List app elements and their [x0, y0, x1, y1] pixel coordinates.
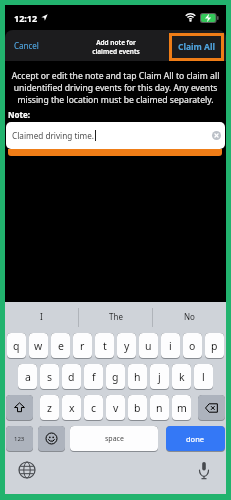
- button[interactable]: Cancel: [14, 40, 39, 51]
- staticText: o: [189, 339, 196, 353]
- staticText: d: [68, 370, 75, 384]
- staticText: 12:12: [14, 12, 38, 24]
- button[interactable]: q: [7, 333, 26, 358]
- staticText: h: [134, 370, 141, 384]
- button[interactable]: Claim All: [169, 33, 224, 61]
- button[interactable]: r: [73, 333, 92, 358]
- button[interactable]: g: [106, 364, 125, 389]
- staticText: u: [145, 339, 152, 353]
- staticText: v: [113, 401, 119, 415]
- staticText: Claimed driving time.: [12, 130, 94, 141]
- staticText: done: [186, 434, 205, 444]
- staticText: a: [25, 370, 31, 384]
- staticText: k: [179, 370, 185, 384]
- button[interactable]: p: [205, 333, 224, 358]
- button[interactable]: [198, 395, 225, 420]
- staticText: Add note for claimed events: [92, 38, 140, 56]
- button[interactable]: Claimed driving time.: [6, 122, 225, 149]
- button[interactable]: l: [194, 364, 213, 389]
- staticText: l: [202, 370, 205, 384]
- staticText: m: [177, 401, 187, 415]
- staticText: y: [124, 339, 130, 353]
- button[interactable]: y: [117, 333, 136, 358]
- button[interactable]: n: [150, 395, 169, 420]
- button[interactable]: h: [128, 364, 147, 389]
- button[interactable]: d: [62, 364, 81, 389]
- button[interactable]: j: [150, 364, 169, 389]
- staticText: q: [13, 339, 20, 353]
- button[interactable]: z: [40, 395, 59, 420]
- staticText: f: [92, 370, 96, 384]
- staticText: j: [158, 370, 161, 384]
- staticText: No: [184, 311, 195, 322]
- button[interactable]: f: [84, 364, 103, 389]
- staticText: g: [112, 370, 119, 384]
- button[interactable]: No: [153, 302, 226, 333]
- button[interactable]: s: [40, 364, 59, 389]
- staticText: Accept or edit the note and tap Claim Al…: [5, 70, 226, 106]
- button[interactable]: k: [172, 364, 191, 389]
- button[interactable]: [38, 426, 65, 451]
- button[interactable]: b: [128, 395, 147, 420]
- button[interactable]: c: [84, 395, 103, 420]
- button[interactable]: m: [172, 395, 191, 420]
- button[interactable]: v: [106, 395, 125, 420]
- staticText: x: [69, 401, 75, 415]
- staticText: Cancel: [14, 40, 39, 51]
- button[interactable]: done: [166, 426, 225, 451]
- staticText: t: [103, 339, 107, 353]
- staticText: Claim All: [178, 41, 216, 53]
- staticText: The: [109, 311, 123, 322]
- button[interactable]: The: [79, 302, 152, 333]
- staticText: s: [47, 370, 53, 384]
- staticText: 123: [14, 435, 25, 443]
- button[interactable]: o: [183, 333, 202, 358]
- staticText: r: [80, 339, 85, 353]
- staticText: i: [169, 339, 172, 353]
- staticText: w: [34, 339, 43, 353]
- button[interactable]: [6, 395, 33, 420]
- staticText: space: [105, 434, 124, 444]
- staticText: c: [91, 401, 97, 415]
- button[interactable]: a: [18, 364, 37, 389]
- staticText: I: [40, 311, 43, 322]
- staticText: z: [47, 401, 52, 415]
- button[interactable]: x: [62, 395, 81, 420]
- staticText: e: [58, 339, 64, 353]
- button[interactable]: w: [29, 333, 48, 358]
- button[interactable]: u: [139, 333, 158, 358]
- button[interactable]: e: [51, 333, 70, 358]
- button[interactable]: i: [161, 333, 180, 358]
- button[interactable]: t: [95, 333, 114, 358]
- button[interactable]: I: [5, 302, 78, 333]
- staticText: p: [211, 339, 218, 353]
- staticText: n: [156, 401, 163, 415]
- button[interactable]: space: [70, 426, 158, 451]
- staticText: b: [134, 401, 141, 415]
- button[interactable]: 123: [6, 426, 33, 451]
- staticText: Note:: [8, 109, 30, 120]
